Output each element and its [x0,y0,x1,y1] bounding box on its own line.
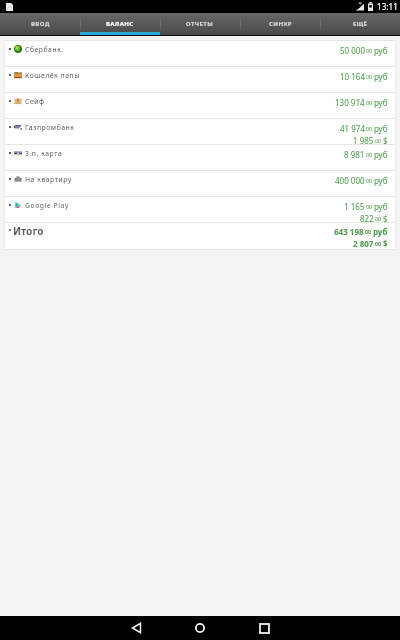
button[interactable]: Back [104,616,168,640]
button[interactable]: ОТЧЕТЫ [160,13,240,32]
staticText: ВВОД [31,20,50,28]
staticText: руб [374,201,388,212]
button[interactable]: Сейф [5,93,395,118]
button[interactable]: Google Play [5,197,395,222]
button[interactable]: ЕЩЁ [320,13,400,32]
staticText: 41 974 [340,123,365,134]
staticText: $ [383,213,388,222]
staticText: Сейф [25,97,45,106]
staticText: 00 [375,240,381,247]
staticText: 130 914 [335,97,365,108]
button[interactable]: Газпромбанк [5,119,395,144]
staticText: 643 198 [334,226,364,237]
button[interactable]: БАЛАНС [80,13,160,32]
staticText: руб [374,71,388,82]
staticText: руб [373,226,388,237]
staticText: 00 [366,47,372,54]
staticText: ЕЩЁ [353,20,368,28]
staticText: 00 [366,151,372,158]
staticText: 00 [375,215,381,222]
staticText: $ [383,135,388,144]
staticText: Google Play [25,201,69,210]
staticText: 13:11 [377,1,398,12]
staticText: 400 000 [335,175,365,186]
button[interactable]: ВВОД [0,13,80,32]
staticText: Итого [13,224,44,238]
button[interactable]: Итого [5,223,395,249]
button[interactable]: Home [168,616,232,640]
staticText: Газпромбанк [25,123,75,132]
staticText: руб [374,175,388,186]
button[interactable]: Сбербанк. [5,41,395,66]
staticText: 2 807 [353,238,374,249]
staticText: На квартиру [25,175,72,184]
button[interactable]: На квартиру [5,171,395,196]
staticText: ОТЧЕТЫ [186,20,214,28]
staticText: 10 164 [340,71,365,82]
staticText: СИНХР [269,20,292,28]
button[interactable]: СИНХР [240,13,320,32]
staticText: 00 [366,177,372,184]
staticText: руб [374,149,388,160]
staticText: З.п. карта [25,149,63,158]
staticText: 00 [375,137,381,144]
staticText: Сбербанк. [25,45,64,54]
staticText: руб [374,123,388,134]
staticText: 00 [365,228,371,235]
staticText: 00 [366,73,372,80]
staticText: руб [374,45,388,56]
staticText: 8 981 [344,149,365,160]
staticText: 1 165 [344,201,365,212]
staticText: 50 000 [340,45,365,56]
staticText: 00 [366,125,372,132]
staticText: 00 [366,203,372,210]
staticText: БАЛАНС [106,20,134,28]
staticText: руб [374,97,388,108]
button[interactable]: Кошелёк папы [5,67,395,92]
staticText: $ [383,238,388,249]
staticText: 00 [366,99,372,106]
staticText: Кошелёк папы [25,71,80,80]
button[interactable]: Recents [232,616,296,640]
button[interactable]: З.п. карта [5,145,395,170]
staticText: 1 985 [353,135,374,144]
staticText: 822 [360,213,374,222]
